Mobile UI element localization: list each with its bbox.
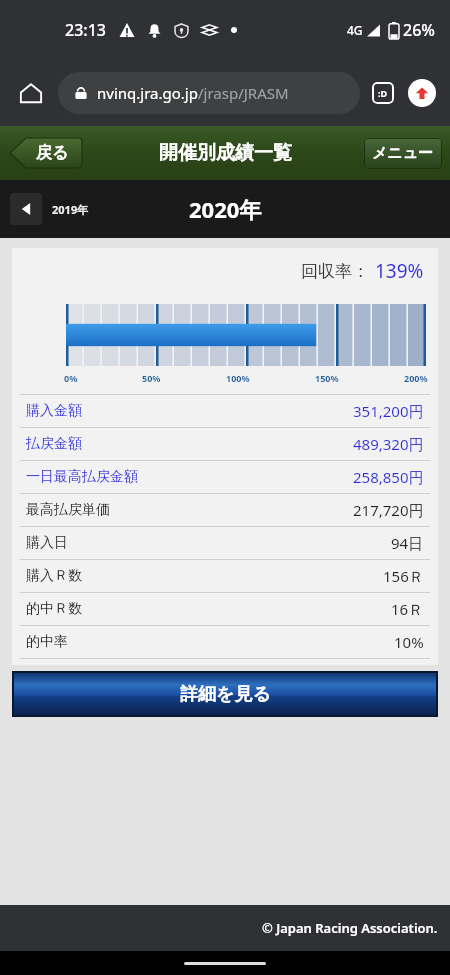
staticText: 最高払戻単価 (26, 501, 110, 519)
staticText: 100% (226, 372, 250, 384)
staticText: nvinq.jra.go.jp (97, 83, 198, 103)
staticText: /jrasp/JRASM (198, 83, 289, 103)
staticText: 150% (315, 372, 339, 384)
staticText: 的中Ｒ数 (26, 600, 82, 618)
staticText: 139% (375, 258, 424, 284)
button[interactable]: 2019年 (10, 193, 89, 225)
staticText: 258,850円 (353, 467, 424, 487)
staticText: 489,320円 (353, 434, 424, 454)
staticText: 10% (394, 632, 424, 652)
staticText: 156Ｒ (383, 566, 424, 586)
staticText: 開催別成績一覧 (159, 141, 292, 165)
staticText: 50% (142, 372, 161, 384)
staticText: 351,200円 (353, 401, 424, 421)
staticText: メニュー (372, 144, 434, 163)
staticText: 200% (404, 372, 428, 384)
button[interactable]: Tabs (368, 78, 398, 108)
staticText: 戻る (36, 143, 69, 163)
staticText: 回収率： (301, 261, 369, 282)
staticText: 詳細を見る (180, 683, 271, 706)
staticText: 26% (403, 19, 435, 41)
button[interactable]: Upload (408, 79, 436, 107)
button[interactable]: Home (14, 76, 48, 110)
staticText: 4G (347, 22, 363, 38)
button[interactable]: 購入金額 (12, 395, 438, 427)
button[interactable]: 払戻金額 (12, 428, 438, 460)
button[interactable]: メニュー (364, 138, 442, 169)
staticText: 購入日 (26, 534, 68, 552)
staticText: 23:13 (65, 19, 106, 41)
staticText: 217,720円 (353, 500, 424, 520)
button[interactable]: 戻る (10, 137, 82, 169)
staticText: © Japan Racing Association. (262, 919, 438, 937)
staticText: 払戻金額 (26, 435, 82, 453)
staticText: 16Ｒ (391, 599, 424, 619)
staticText: 購入金額 (26, 402, 82, 420)
staticText: 的中率 (26, 633, 68, 651)
staticText: 2020年 (189, 194, 262, 224)
staticText: 2019年 (52, 202, 89, 217)
staticText: 購入Ｒ数 (26, 567, 82, 585)
button[interactable]: 詳細を見る (12, 671, 438, 717)
button[interactable]: nvinq.jra.go.jp (58, 72, 360, 114)
staticText: 0% (64, 372, 78, 384)
staticText: 94日 (391, 533, 424, 553)
staticText: 一日最高払戻金額 (26, 468, 138, 486)
staticText: :D (378, 87, 388, 99)
button[interactable]: 一日最高払戻金額 (12, 461, 438, 493)
